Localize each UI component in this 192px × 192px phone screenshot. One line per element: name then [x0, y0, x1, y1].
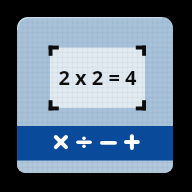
- button[interactable]: Math scanner app icon: [0, 0, 192, 192]
- staticText: 2 x 2 = 4: [58, 64, 137, 91]
